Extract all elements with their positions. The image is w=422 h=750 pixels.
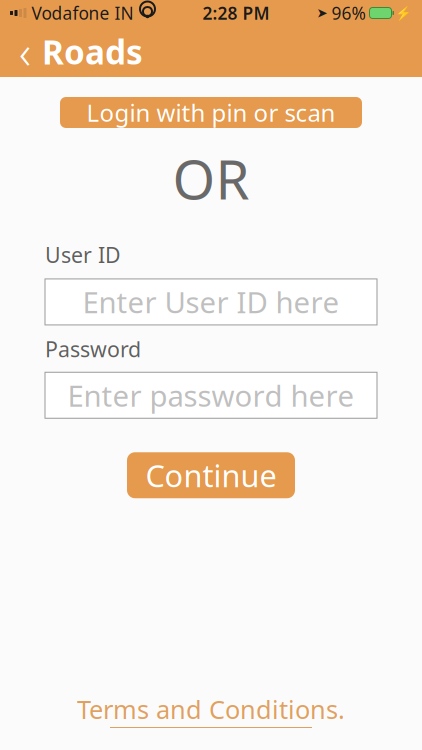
staticText: OR [172,142,249,215]
staticText: Enter User ID here [82,282,339,321]
button[interactable]: Terms and Conditions. [77,692,345,728]
staticText: Enter password here [67,376,354,415]
staticText: Roads [42,29,143,74]
staticText: Terms and Conditions. [77,692,345,726]
staticText: ➤ [316,5,327,20]
staticText: ⚡ [395,5,412,21]
staticText: 2:28 PM [202,1,269,24]
button[interactable]: Continue [127,452,295,498]
staticText: User ID [45,241,121,269]
staticText: 96% [331,1,365,24]
button[interactable]: Login with pin or scan [60,97,362,128]
staticText: Vodafone IN [31,1,133,24]
staticText: ‹ [19,21,31,82]
staticText: Continue [145,455,276,496]
staticText: Password [45,335,141,363]
button[interactable]: Back [8,29,42,73]
button[interactable]: Enter password here [45,372,377,418]
button[interactable]: Roads [42,29,143,74]
staticText: Login with pin or scan [86,97,335,128]
button[interactable]: Enter User ID here [45,279,377,325]
